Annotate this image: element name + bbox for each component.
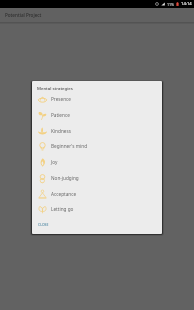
- staticText: Potential Project: [5, 12, 42, 18]
- staticText: Letting go: [51, 206, 74, 212]
- button[interactable]: Dismiss dialog: [0, 0, 194, 310]
- staticText: Beginner's mind: [51, 143, 88, 149]
- staticText: Acceptance: [51, 191, 77, 197]
- staticText: Patience: [51, 112, 70, 118]
- button[interactable]: Beginner's mind: [32, 138, 162, 154]
- button[interactable]: CLOSE: [35, 219, 52, 230]
- staticText: Joy: [51, 159, 58, 165]
- staticText: Non-judging: [51, 175, 79, 181]
- button[interactable]: Letting go: [32, 201, 162, 217]
- button[interactable]: Acceptance: [32, 186, 162, 202]
- button[interactable]: Kindness: [32, 123, 162, 139]
- staticText: 14:14: [181, 1, 192, 7]
- button[interactable]: Presence: [32, 91, 162, 107]
- staticText: 11%: [167, 2, 175, 7]
- button[interactable]: Joy: [32, 154, 162, 170]
- staticText: Mental strategies: [37, 85, 73, 91]
- button[interactable]: Patience: [32, 107, 162, 123]
- staticText: CLOSE: [38, 222, 49, 227]
- staticText: Kindness: [51, 128, 71, 134]
- button[interactable]: Non-judging: [32, 170, 162, 186]
- staticText: Presence: [51, 96, 72, 102]
